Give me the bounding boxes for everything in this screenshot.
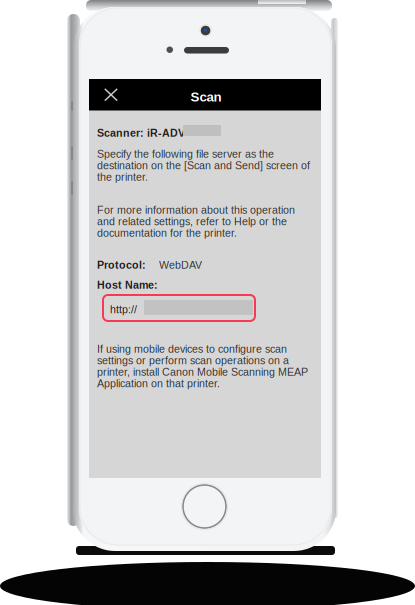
staticText: Scanner: iR-ADV (97, 127, 185, 139)
staticText: Protocol: (97, 259, 146, 271)
staticText: Scan (190, 89, 221, 104)
button[interactable]: Close (92, 79, 130, 110)
staticText: Host Name: (97, 279, 158, 291)
staticText: If using mobile devices to configure sca… (97, 343, 308, 389)
staticText: Specify the following file server as the… (97, 148, 310, 183)
staticText: WebDAV (159, 259, 202, 271)
staticText: http:// (110, 303, 137, 315)
staticText: For more information about this operatio… (97, 204, 295, 239)
